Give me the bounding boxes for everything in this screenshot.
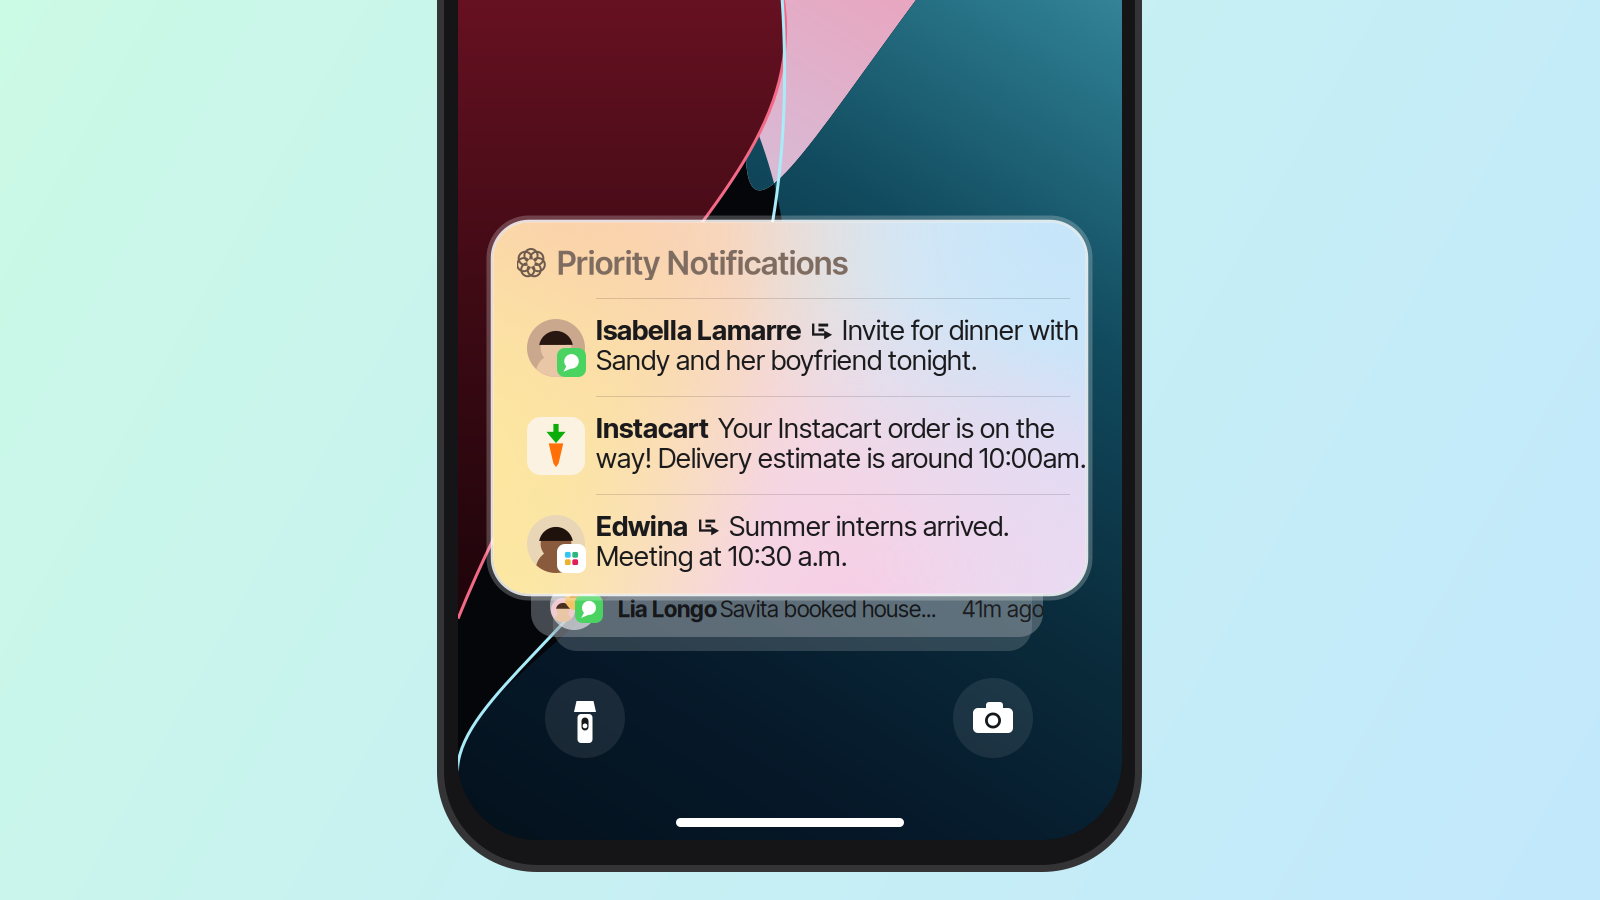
staticText: Edwina xyxy=(596,509,688,543)
staticText: Priority Notifications xyxy=(557,244,848,282)
button[interactable]: Edwina xyxy=(517,514,1086,576)
button[interactable]: Instacart xyxy=(517,416,1086,478)
button[interactable]: Flashlight xyxy=(545,678,625,758)
staticText: Meeting at 10:30 a.m. xyxy=(596,539,847,573)
button[interactable]: Priority Notifications xyxy=(517,246,1062,280)
staticText: way! Delivery estimate is around 10:00am… xyxy=(596,441,1086,475)
staticText: Summer interns arrived. xyxy=(729,509,1009,543)
button[interactable]: Camera xyxy=(953,678,1033,758)
staticText: Sandy and her boyfriend tonight. xyxy=(596,343,977,377)
staticText: Your Instacart order is on the xyxy=(718,411,1055,445)
staticText: Invite for dinner with xyxy=(842,313,1079,347)
staticText: 41m ago xyxy=(962,595,1044,623)
staticText: Lia Longo xyxy=(618,595,717,623)
staticText: Savita booked house... xyxy=(720,595,936,623)
button[interactable]: Isabella Lamarre xyxy=(517,318,1086,380)
staticText: Instacart xyxy=(596,411,709,445)
staticText: Isabella Lamarre xyxy=(596,313,801,347)
button[interactable]: Lia Longo xyxy=(531,566,1043,637)
